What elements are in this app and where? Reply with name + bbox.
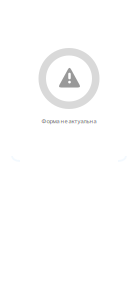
staticText: Форма не актуальна <box>41 117 96 125</box>
